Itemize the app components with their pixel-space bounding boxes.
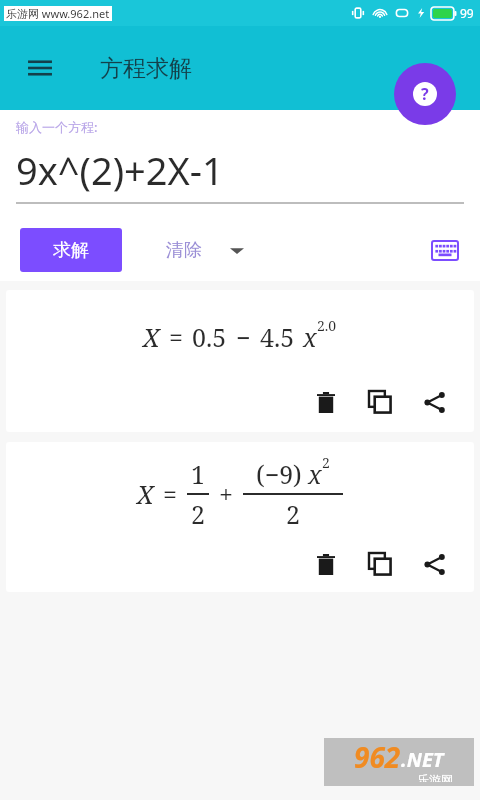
staticText: 4.5: [260, 320, 295, 354]
button[interactable]: Delete: [308, 384, 344, 420]
staticText: 962: [354, 738, 401, 776]
button[interactable]: 清除: [166, 239, 244, 262]
staticText: 2: [191, 497, 205, 531]
staticText: (−9): [256, 457, 302, 491]
staticText: X: [137, 477, 154, 511]
button[interactable]: 9x^(2)+2X-1: [16, 144, 464, 196]
button[interactable]: 求解: [20, 228, 122, 272]
button[interactable]: Copy: [362, 384, 398, 420]
staticText: 99: [460, 5, 474, 21]
staticText: 清除: [166, 239, 202, 262]
staticText: X: [143, 320, 160, 354]
button[interactable]: Open navigation menu: [20, 48, 60, 88]
staticText: x: [308, 457, 322, 491]
staticText: =: [169, 320, 183, 354]
staticText: 输入一个方程:: [16, 118, 98, 136]
button[interactable]: X: [6, 290, 474, 432]
staticText: 求解: [53, 239, 89, 262]
staticText: .NET: [401, 746, 444, 773]
staticText: 方程求解: [100, 54, 192, 83]
staticText: 乐游网 www.962.net: [6, 6, 110, 21]
staticText: =: [163, 477, 177, 511]
staticText: ?: [421, 83, 429, 105]
button[interactable]: X: [6, 442, 474, 592]
staticText: 9x^(2)+2X-1: [16, 144, 224, 196]
button[interactable]: Copy: [362, 546, 398, 582]
staticText: −: [236, 320, 251, 354]
button[interactable]: Share: [416, 546, 452, 582]
staticText: 1: [191, 457, 205, 491]
staticText: 2: [322, 453, 330, 472]
staticText: x: [303, 320, 317, 354]
button[interactable]: Show keyboard: [428, 233, 462, 267]
button[interactable]: Help: [394, 63, 456, 125]
button[interactable]: Delete: [308, 546, 344, 582]
staticText: 2.0: [317, 316, 337, 335]
button[interactable]: Share: [416, 384, 452, 420]
staticText: 0.5: [192, 320, 227, 354]
staticText: 2: [286, 497, 300, 531]
staticText: 乐游网: [417, 772, 453, 782]
staticText: +: [219, 477, 233, 511]
